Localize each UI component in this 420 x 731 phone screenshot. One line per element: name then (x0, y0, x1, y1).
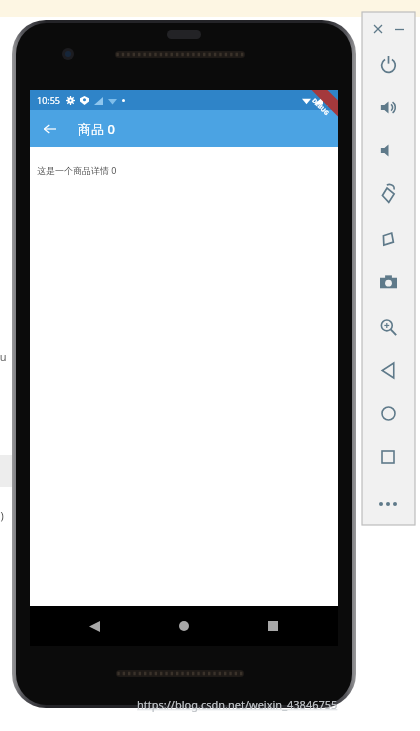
button[interactable]: Volume up (372, 91, 404, 123)
button[interactable]: Recent apps (372, 441, 404, 473)
button[interactable]: Minimize (390, 20, 408, 38)
staticText: 这是一个商品详情 0 (37, 164, 117, 176)
button[interactable]: Home (372, 397, 404, 429)
button[interactable]: Navigate up (35, 114, 65, 144)
button[interactable]: Rotate left (372, 179, 404, 211)
staticText: ") (0, 508, 4, 523)
staticText: https://blog.csdn.net/weixin_43846755 (137, 697, 338, 712)
button[interactable]: Back (83, 615, 105, 637)
button[interactable]: Power (372, 48, 404, 80)
button[interactable]: Rotate right (372, 223, 404, 255)
button[interactable]: Home (173, 615, 195, 637)
button[interactable]: More (372, 488, 404, 520)
button[interactable]: Close (369, 20, 387, 38)
staticText: DEBUG (310, 97, 331, 117)
button[interactable]: Zoom (372, 311, 404, 343)
staticText: lu (0, 349, 7, 364)
button[interactable]: Recent apps (262, 615, 284, 637)
button[interactable]: Volume down (372, 134, 404, 166)
staticText: 10:55 (37, 94, 61, 106)
button[interactable]: Back (372, 354, 404, 386)
staticText: 商品 0 (78, 120, 115, 138)
button[interactable]: Take screenshot (372, 266, 404, 298)
